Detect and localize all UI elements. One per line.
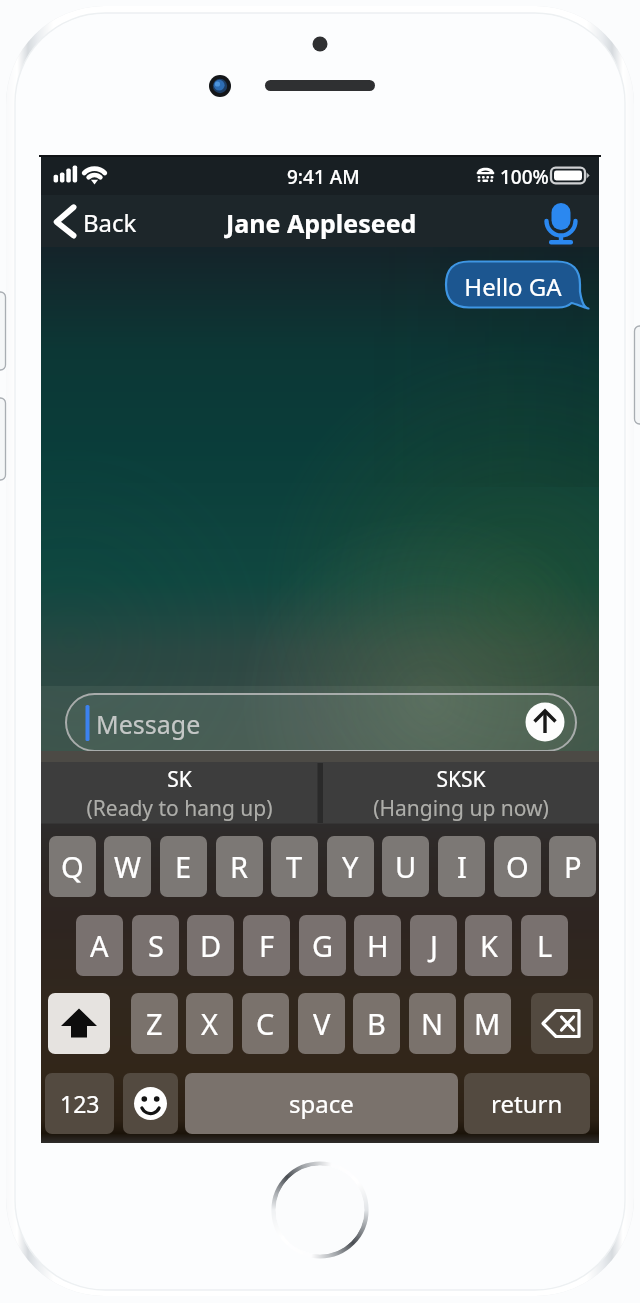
staticText: Message [96, 707, 201, 741]
button[interactable]: J [410, 915, 457, 976]
staticText: T [286, 847, 303, 886]
staticText: Back [83, 206, 137, 239]
button[interactable]: Y [327, 836, 374, 897]
staticText: 100% [500, 164, 549, 190]
staticText: N [421, 1004, 444, 1043]
button[interactable]: Emoji [123, 1073, 178, 1134]
button[interactable]: E [160, 836, 207, 897]
staticText: X [201, 1004, 218, 1043]
button[interactable]: G [299, 915, 346, 976]
staticText: M [474, 1004, 501, 1043]
button[interactable]: Hello GA [446, 261, 580, 307]
button[interactable]: K [465, 915, 512, 976]
staticText: SK [167, 765, 192, 794]
button[interactable]: V [298, 993, 345, 1054]
staticText: (Ready to hang up) [86, 794, 273, 823]
button[interactable]: R [216, 836, 263, 897]
button[interactable]: SK [41, 762, 318, 824]
staticText: U [395, 847, 417, 886]
button[interactable]: I [438, 836, 485, 897]
button[interactable]: space [185, 1073, 458, 1134]
button[interactable]: A [76, 915, 123, 976]
staticText: 9:41 AM [287, 164, 360, 190]
button[interactable]: N [409, 993, 456, 1054]
button[interactable]: Shift [48, 993, 110, 1054]
staticText: O [506, 847, 529, 886]
button[interactable]: W [104, 836, 151, 897]
staticText: return [491, 1087, 563, 1120]
staticText: V [313, 1004, 331, 1043]
button[interactable]: H [354, 915, 401, 976]
staticText: space [289, 1087, 354, 1120]
button[interactable]: 123 [45, 1073, 114, 1134]
button[interactable]: C [242, 993, 289, 1054]
staticText: 123 [60, 1088, 100, 1119]
staticText: P [564, 847, 582, 886]
staticText: K [480, 926, 498, 965]
button[interactable]: P [549, 836, 596, 897]
staticText: H [367, 926, 389, 965]
button[interactable]: return [464, 1073, 590, 1134]
staticText: D [200, 926, 222, 965]
staticText: Q [61, 847, 84, 886]
button[interactable]: Backspace [531, 993, 593, 1054]
staticText: E [175, 847, 192, 886]
staticText: L [537, 926, 553, 965]
button[interactable]: SKSK [323, 762, 599, 824]
staticText: C [256, 1004, 275, 1043]
button[interactable]: Z [131, 993, 178, 1054]
staticText: S [148, 926, 164, 965]
staticText: A [90, 926, 109, 965]
staticText: SKSK [436, 765, 486, 794]
staticText: (Hanging up now) [373, 794, 549, 823]
staticText: J [430, 926, 438, 965]
staticText: W [114, 847, 141, 886]
staticText: F [259, 926, 275, 965]
staticText: G [312, 926, 334, 965]
button[interactable]: F [243, 915, 290, 976]
button[interactable]: X [186, 993, 233, 1054]
staticText: R [230, 847, 249, 886]
staticText: Y [342, 847, 359, 886]
button[interactable]: D [187, 915, 234, 976]
staticText: B [367, 1004, 386, 1043]
staticText: Z [146, 1004, 163, 1043]
button[interactable]: M [464, 993, 511, 1054]
button[interactable]: Dictation [537, 196, 587, 246]
staticText: Jane Appleseed [226, 206, 417, 240]
button[interactable]: Q [49, 836, 96, 897]
button[interactable]: O [494, 836, 541, 897]
button[interactable]: U [382, 836, 429, 897]
button[interactable]: B [353, 993, 400, 1054]
button[interactable]: T [271, 836, 318, 897]
button[interactable]: Back [51, 199, 137, 245]
staticText: I [457, 847, 467, 886]
button[interactable]: S [132, 915, 179, 976]
button[interactable]: L [521, 915, 568, 976]
